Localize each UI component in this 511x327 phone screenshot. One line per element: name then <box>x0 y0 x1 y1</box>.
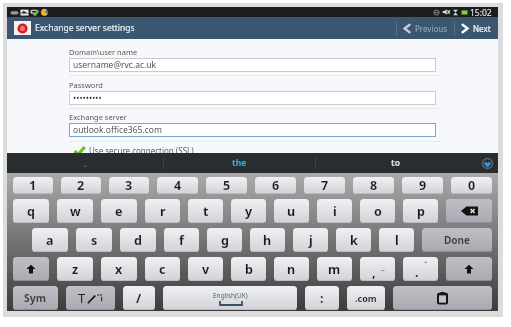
staticText: 4 <box>174 177 182 194</box>
button[interactable]: y <box>231 199 266 223</box>
staticText: v <box>202 261 210 278</box>
button[interactable]: 9 <box>402 177 443 194</box>
button[interactable]: w <box>57 199 93 223</box>
staticText: . <box>84 157 87 169</box>
staticText: the <box>232 157 247 169</box>
staticText: Sym <box>24 291 47 305</box>
staticText: : <box>320 290 324 307</box>
button[interactable]: z <box>57 257 93 281</box>
staticText: Domain\user name <box>69 47 138 57</box>
button[interactable]: j <box>293 228 328 252</box>
button[interactable]: g <box>207 228 242 252</box>
button[interactable]: k <box>336 228 371 252</box>
button[interactable]: ••••••••• <box>69 91 436 105</box>
staticText: c <box>159 261 166 278</box>
button[interactable]: Clipboard <box>393 286 492 310</box>
staticText: s <box>91 232 98 249</box>
button[interactable]: 8 <box>353 177 394 194</box>
button[interactable]: , <box>360 257 395 281</box>
button[interactable]: e <box>101 199 137 223</box>
button[interactable]: s <box>76 228 112 252</box>
staticText: n <box>287 261 296 278</box>
button[interactable]: c <box>145 257 180 281</box>
staticText: Password <box>69 80 103 90</box>
button[interactable]: m <box>317 257 352 281</box>
staticText: l <box>395 232 399 249</box>
staticText: 1 <box>29 177 37 194</box>
staticText: u <box>287 203 296 220</box>
button[interactable]: . <box>403 257 438 281</box>
button[interactable]: Expand suggestions <box>476 153 498 173</box>
button[interactable]: Exchange server settings <box>14 21 135 35</box>
button[interactable]: p <box>403 199 438 223</box>
staticText: 6 <box>272 177 280 194</box>
button[interactable]: Backspace <box>446 199 492 223</box>
staticText: .com <box>355 292 377 304</box>
button[interactable]: Previous <box>397 17 454 39</box>
staticText: outlook.office365.com <box>73 124 162 136</box>
staticText: 8 <box>370 177 378 194</box>
staticText: 5 <box>223 177 231 194</box>
button[interactable]: Handwriting input <box>66 286 115 310</box>
button[interactable]: the <box>164 153 315 173</box>
staticText: g <box>221 232 229 249</box>
staticText: , <box>372 264 376 281</box>
button[interactable]: u <box>274 199 309 223</box>
button[interactable]: Sym <box>13 286 58 310</box>
button[interactable]: Space <box>163 286 297 310</box>
button[interactable]: Use secure connection (SSL) <box>74 145 194 156</box>
button[interactable]: d <box>120 228 156 252</box>
staticText: Previous <box>415 23 448 34</box>
button[interactable]: 4 <box>157 177 198 194</box>
button[interactable]: f <box>164 228 199 252</box>
staticText: h <box>263 232 272 249</box>
button[interactable]: Next <box>455 17 498 39</box>
button[interactable]: to <box>316 153 476 173</box>
button[interactable]: x <box>101 257 137 281</box>
staticText: x <box>115 261 123 278</box>
button[interactable]: .com <box>347 286 385 310</box>
button[interactable]: Shift <box>446 257 492 281</box>
button[interactable]: Shift <box>13 257 49 281</box>
staticText: . <box>415 264 419 281</box>
button[interactable]: q <box>13 199 49 223</box>
button[interactable]: 3 <box>109 177 149 194</box>
button[interactable]: Done <box>422 228 492 252</box>
staticText: 3 <box>125 177 133 194</box>
button[interactable]: : <box>305 286 339 310</box>
staticText: r <box>160 203 166 220</box>
button[interactable]: o <box>360 199 395 223</box>
staticText: Exchange server settings <box>35 22 135 34</box>
button[interactable]: b <box>231 257 266 281</box>
button[interactable]: t <box>188 199 223 223</box>
staticText: _ <box>381 260 385 271</box>
button[interactable]: h <box>250 228 285 252</box>
button[interactable]: 1 <box>13 177 53 194</box>
button[interactable]: 7 <box>304 177 345 194</box>
staticText: ••••••••• <box>73 92 102 104</box>
staticText: English(UK) <box>213 291 248 300</box>
staticText: p <box>417 203 425 220</box>
staticText: Next <box>473 23 491 34</box>
staticText: a <box>46 232 54 249</box>
button[interactable]: n <box>274 257 309 281</box>
button[interactable]: 6 <box>255 177 296 194</box>
button[interactable]: 0 <box>451 177 492 194</box>
button[interactable]: outlook.office365.com <box>69 123 436 137</box>
staticText: m <box>328 261 341 278</box>
staticText: i <box>333 203 337 220</box>
button[interactable]: 5 <box>206 177 247 194</box>
button[interactable]: r <box>145 199 180 223</box>
button[interactable]: i <box>317 199 352 223</box>
button[interactable]: a <box>32 228 68 252</box>
button[interactable]: / <box>123 286 155 310</box>
staticText: t <box>203 203 209 220</box>
staticText: f <box>179 232 184 249</box>
button[interactable]: l <box>379 228 414 252</box>
button[interactable]: 2 <box>61 177 101 194</box>
staticText: Use secure connection (SSL) <box>89 145 194 156</box>
button[interactable]: username@rvc.ac.uk <box>69 58 436 72</box>
staticText: 2 <box>77 177 85 194</box>
button[interactable]: v <box>188 257 223 281</box>
